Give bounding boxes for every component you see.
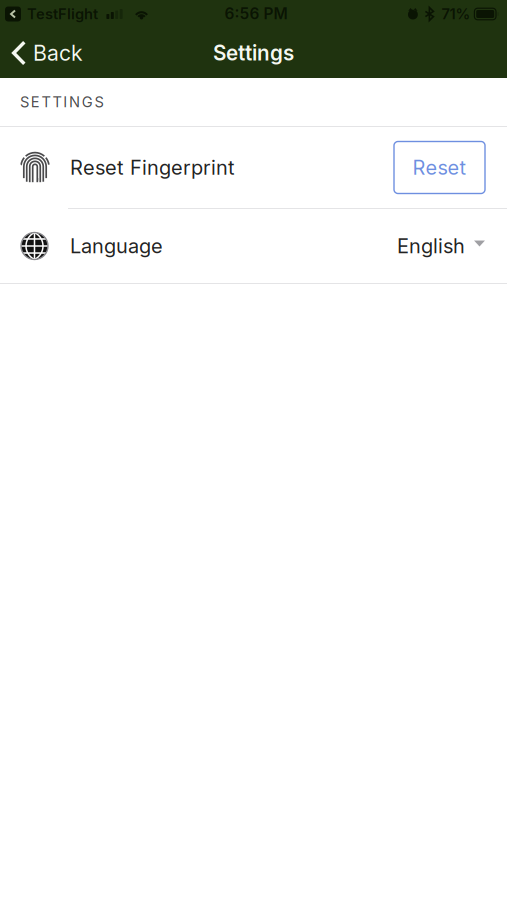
staticText: Reset Fingerprint (70, 155, 235, 180)
button[interactable]: Reset (394, 141, 485, 193)
staticText: English (397, 234, 465, 258)
staticText: Reset (412, 155, 466, 180)
button[interactable]: Language (0, 209, 507, 283)
button[interactable]: Back (0, 28, 93, 78)
staticText: TestFlight (27, 5, 98, 23)
staticText: 71% (441, 5, 470, 23)
staticText: SETTINGS (20, 93, 104, 111)
staticText: Back (33, 40, 83, 66)
staticText: 6:56 PM (224, 4, 287, 23)
staticText: Settings (213, 40, 294, 65)
button[interactable]: Reset Fingerprint (0, 127, 507, 208)
staticText: Language (70, 234, 163, 258)
